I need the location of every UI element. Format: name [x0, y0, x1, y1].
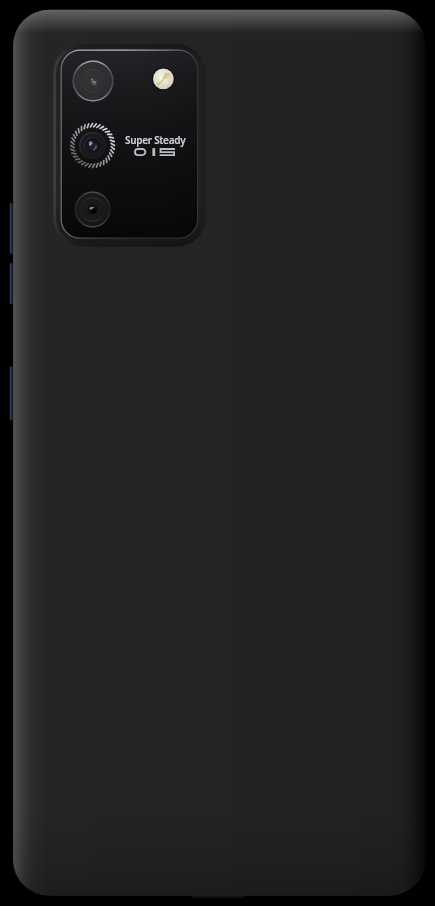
staticText: Super Steady — [125, 133, 186, 147]
